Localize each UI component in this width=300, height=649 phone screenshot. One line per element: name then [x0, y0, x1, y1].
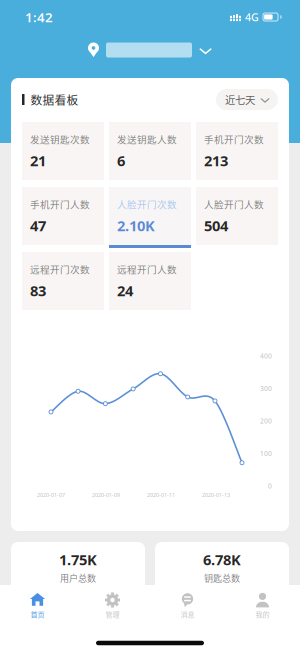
staticText: 83	[30, 281, 46, 300]
button[interactable]: 我的	[225, 585, 300, 632]
staticText: 远程开门次数	[30, 262, 90, 276]
staticText: 管理	[105, 609, 119, 619]
staticText: 1:42	[25, 8, 53, 26]
button[interactable]: 远程开门人数	[109, 252, 191, 314]
button[interactable]: 1.75K	[11, 542, 145, 592]
staticText: 手机开门次数	[204, 132, 264, 146]
staticText: 2020-01-07	[37, 491, 65, 499]
staticText: 6.78K	[203, 550, 241, 569]
staticText: 2020-01-11	[147, 491, 175, 499]
staticText: 发送钥匙次数	[30, 132, 90, 146]
button[interactable]: 发送钥匙人数	[109, 122, 191, 184]
staticText: 人脸开门人数	[204, 197, 264, 211]
staticText: 消息	[180, 609, 194, 619]
staticText: 我的	[255, 609, 269, 619]
button[interactable]: 发送钥匙次数	[22, 122, 104, 184]
staticText: 6	[117, 151, 125, 170]
staticText: 近七天	[225, 92, 255, 107]
staticText: 400	[260, 352, 272, 360]
staticText: 100	[260, 449, 272, 458]
staticText: 发送钥匙人数	[117, 132, 177, 146]
staticText: 0	[268, 482, 272, 490]
staticText: 213	[204, 151, 228, 170]
button[interactable]: 手机开门人数	[22, 187, 104, 249]
staticText: 用户总数	[60, 571, 96, 584]
button[interactable]: 消息	[150, 585, 225, 632]
staticText: 2020-01-13	[202, 491, 230, 499]
staticText: 人脸开门次数	[117, 197, 177, 211]
button[interactable]: 手机开门次数	[196, 122, 278, 184]
button[interactable]: 近七天	[216, 89, 278, 110]
staticText: 数据看板	[30, 91, 78, 108]
button[interactable]: 6.78K	[155, 542, 289, 592]
staticText: 2020-01-09	[92, 491, 120, 499]
staticText: 首页	[30, 609, 44, 619]
staticText: 200	[260, 417, 272, 425]
staticText: 47	[30, 216, 46, 235]
staticText: 1.75K	[59, 550, 97, 569]
staticText: 远程开门人数	[117, 262, 177, 276]
staticText: 钥匙总数	[204, 571, 240, 584]
staticText: 4G	[245, 10, 259, 24]
button[interactable]: 管理	[75, 585, 150, 632]
button[interactable]: 人脸开门人数	[196, 187, 278, 249]
staticText: 21	[30, 151, 46, 170]
staticText: 24	[117, 281, 133, 300]
staticText: 504	[204, 216, 228, 235]
staticText: 手机开门人数	[30, 197, 90, 211]
button[interactable]: 人脸开门次数	[109, 187, 191, 249]
button[interactable]: 远程开门次数	[22, 252, 104, 314]
button[interactable]: 首页	[0, 585, 75, 632]
staticText: 2.10K	[117, 216, 155, 235]
staticText: 300	[260, 384, 272, 393]
